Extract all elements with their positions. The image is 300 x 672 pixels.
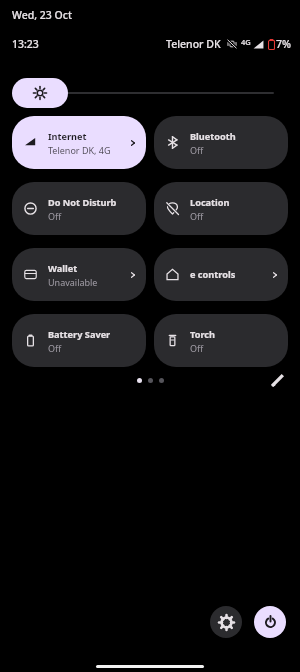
staticText: Internet — [48, 130, 87, 143]
button[interactable]: Power — [254, 606, 286, 638]
button[interactable]: Battery Saver — [12, 314, 146, 367]
staticText: Wed, 23 Oct — [12, 8, 72, 22]
staticText: Off — [190, 210, 204, 222]
staticText: Telenor DK, 4G — [48, 144, 111, 156]
button[interactable]: Location — [154, 182, 288, 235]
button[interactable]: Brightness — [12, 78, 288, 108]
button[interactable]: Settings — [210, 606, 242, 638]
staticText: Battery Saver — [48, 328, 111, 341]
staticText: Off — [190, 144, 204, 156]
staticText: Torch — [190, 328, 216, 341]
button[interactable]: Torch — [154, 314, 288, 367]
staticText: 7% — [276, 37, 291, 51]
button[interactable]: e controls — [154, 248, 288, 301]
button[interactable]: Edit tiles — [266, 369, 288, 391]
button[interactable]: Internet — [12, 116, 146, 169]
staticText: Off — [190, 342, 204, 354]
staticText: Telenor DK — [166, 37, 221, 51]
button[interactable]: Wallet — [12, 248, 146, 301]
staticText: Do Not Disturb — [48, 196, 117, 209]
button[interactable]: Do Not Disturb — [12, 182, 146, 235]
staticText: Off — [48, 210, 62, 222]
staticText: Bluetooth — [190, 130, 236, 143]
staticText: 4G — [241, 37, 251, 47]
button[interactable]: Bluetooth — [154, 116, 288, 169]
staticText: Wallet — [48, 262, 78, 275]
staticText: Off — [48, 342, 62, 354]
staticText: Unavailable — [48, 276, 98, 288]
staticText: 13:23 — [12, 37, 39, 51]
staticText: Location — [190, 196, 230, 209]
staticText: e controls — [190, 268, 236, 281]
